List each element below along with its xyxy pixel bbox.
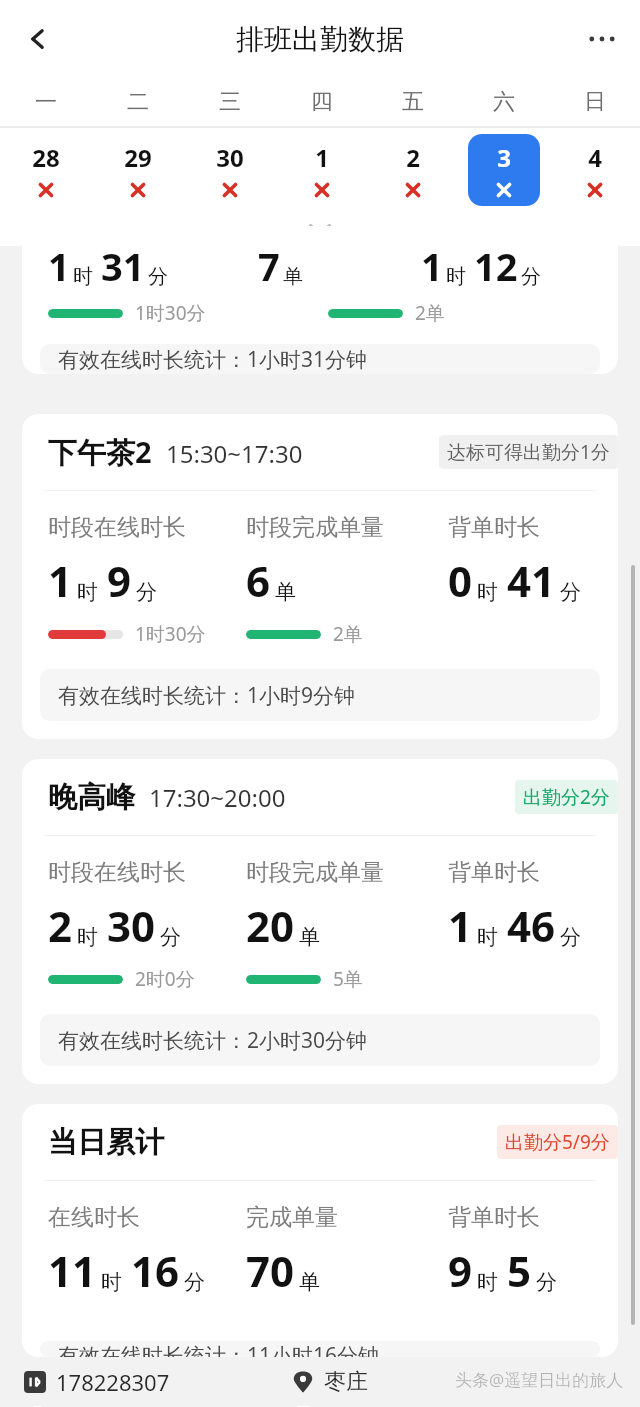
staticText: 时 [77, 924, 98, 950]
staticText: 单 [283, 264, 303, 289]
staticText: 当日累计 [48, 1124, 164, 1161]
staticText: 2 [406, 141, 420, 174]
staticText: 二 [127, 88, 149, 116]
staticText: 分 [160, 924, 181, 950]
button[interactable]: 29 [92, 128, 184, 212]
staticText: 1 [421, 240, 443, 292]
staticText: 2时0分 [135, 966, 195, 992]
staticText: 46 [507, 897, 556, 954]
staticText: 分 [536, 1269, 557, 1295]
staticText: 下午茶2 [48, 432, 152, 472]
staticText: 六 [493, 88, 515, 116]
button[interactable]: 晚高峰 [22, 759, 618, 1084]
staticText: 178228307 [56, 1367, 170, 1397]
staticText: 排班出勤数据 [236, 22, 404, 57]
staticText: 41 [507, 552, 556, 609]
button[interactable]: 30 [184, 128, 276, 212]
staticText: 1 [448, 897, 473, 954]
staticText: 单 [299, 924, 320, 950]
staticText: 分 [136, 579, 157, 605]
staticText: 单 [275, 579, 296, 605]
staticText: 出勤分2分 [523, 784, 610, 810]
staticText: 单 [299, 1269, 320, 1295]
staticText: 三 [219, 88, 241, 116]
staticText: 31 [101, 240, 145, 292]
staticText: 分 [148, 264, 168, 289]
staticText: 15:30~17:30 [166, 437, 303, 470]
staticText: 枣庄 [324, 1368, 368, 1396]
button[interactable]: More options [578, 15, 626, 63]
staticText: 分 [184, 1269, 205, 1295]
button[interactable]: 3 [458, 128, 549, 212]
staticText: 时段在线时长 [48, 513, 186, 542]
staticText: 五 [402, 88, 424, 116]
button[interactable]: 当日累计 [22, 1104, 618, 1357]
staticText: 7 [258, 240, 280, 292]
staticText: 时段在线时长 [48, 858, 186, 887]
staticText: 分 [560, 579, 581, 605]
staticText: 时 [477, 1269, 498, 1295]
staticText: 时 [73, 264, 93, 289]
button[interactable]: 1 [22, 226, 618, 374]
staticText: 1 [48, 552, 73, 609]
staticText: 2单 [333, 621, 363, 647]
staticText: 时 [477, 924, 498, 950]
staticText: 分 [560, 924, 581, 950]
staticText: 20 [246, 897, 295, 954]
staticText: 6 [246, 552, 271, 609]
staticText: 时段完成单量 [246, 858, 384, 887]
staticText: 完成单量 [246, 1203, 338, 1232]
staticText: 11 [48, 1242, 97, 1299]
staticText: 分 [521, 264, 541, 289]
staticText: 1 [315, 141, 329, 174]
staticText: 17:30~20:00 [149, 781, 286, 814]
staticText: 一 [35, 88, 57, 116]
staticText: 16 [131, 1242, 180, 1299]
staticText: 有效在线时长统计：1小时9分钟 [58, 681, 356, 710]
staticText: 日 [584, 88, 606, 116]
staticText: 四 [311, 88, 333, 116]
staticText: 9 [448, 1242, 473, 1299]
staticText: 2单 [415, 300, 445, 326]
staticText: 在线时长 [48, 1203, 140, 1232]
staticText: 背单时长 [448, 858, 540, 887]
staticText: 达标可得出勤分1分 [447, 439, 610, 465]
staticText: 有效在线时长统计：2小时30分钟 [58, 1026, 368, 1055]
button[interactable]: 1 [276, 128, 367, 212]
staticText: 1 [48, 240, 70, 292]
staticText: 4 [588, 141, 602, 174]
staticText: 时段完成单量 [246, 513, 384, 542]
staticText: 29 [124, 141, 152, 174]
button[interactable]: 下午茶2 [22, 414, 618, 739]
staticText: 0 [448, 552, 473, 609]
staticText: 2 [48, 897, 73, 954]
staticText: 时 [77, 579, 98, 605]
staticText: 有效在线时长统计：11小时16分钟 [58, 1341, 380, 1357]
staticText: 30 [107, 897, 156, 954]
staticText: 有效在线时长统计：1小时31分钟 [58, 345, 368, 374]
staticText: 9 [107, 552, 132, 609]
staticText: 时 [477, 579, 498, 605]
staticText: 30 [216, 141, 244, 174]
button[interactable]: Back [14, 15, 62, 63]
staticText: 5单 [333, 966, 363, 992]
staticText: 12 [474, 240, 518, 292]
staticText: 时 [101, 1269, 122, 1295]
staticText: 晚高峰 [48, 779, 135, 816]
staticText: 5 [507, 1242, 532, 1299]
staticText: 背单时长 [448, 513, 540, 542]
staticText: 时 [446, 264, 466, 289]
staticText: 1时30分 [135, 300, 206, 326]
button[interactable]: 4 [549, 128, 640, 212]
staticText: 28 [32, 141, 60, 174]
button[interactable]: 28 [0, 128, 92, 212]
staticText: 3 [497, 141, 511, 174]
staticText: 出勤分5/9分 [505, 1129, 610, 1155]
staticText: 背单时长 [448, 1203, 540, 1232]
button[interactable]: 2 [367, 128, 458, 212]
staticText: 70 [246, 1242, 295, 1299]
staticText: 1时30分 [135, 621, 206, 647]
staticText: 头条@遥望日出的旅人 [455, 1368, 624, 1391]
